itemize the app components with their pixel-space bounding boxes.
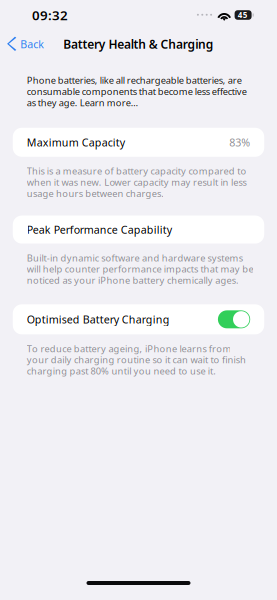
staticText: Maximum Capacity <box>27 135 125 149</box>
staticText: Peak Performance Capability <box>27 222 172 237</box>
staticText: Optimised Battery Charging <box>27 312 170 326</box>
button[interactable]: Back <box>0 32 50 56</box>
staticText: Back <box>20 37 44 51</box>
button[interactable]: Peak Performance Capability <box>13 216 264 244</box>
staticText: Battery Health & Charging <box>63 36 214 52</box>
staticText: This is a measure of battery capacity co… <box>27 165 247 200</box>
staticText: Built-in dynamic software and hardware s… <box>27 252 253 286</box>
staticText: 09:32 <box>32 6 68 24</box>
button[interactable]: Optimised Battery Charging <box>13 304 264 334</box>
staticText: To reduce battery ageing, iPhone learns … <box>27 342 246 377</box>
staticText: Phone batteries, like all rechargeable b… <box>27 74 247 109</box>
staticText: 83% <box>229 135 250 149</box>
button[interactable]: Maximum Capacity <box>13 128 264 157</box>
staticText: 45 <box>238 10 248 20</box>
